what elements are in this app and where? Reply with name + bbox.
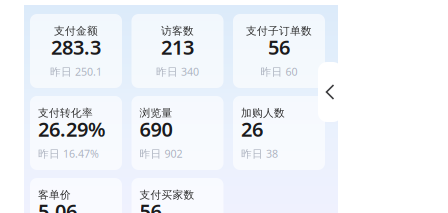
- staticText: 283.3: [51, 34, 101, 60]
- button[interactable]: 浏览量: [131, 96, 223, 170]
- button[interactable]: 支付转化率: [30, 96, 122, 170]
- staticText: 26.29%: [38, 116, 106, 142]
- button[interactable]: 支付金额: [30, 14, 122, 88]
- staticText: 支付子订单数: [246, 24, 312, 37]
- button[interactable]: 访客数: [131, 14, 223, 88]
- staticText: 690: [139, 116, 172, 142]
- staticText: 访客数: [161, 24, 194, 37]
- button[interactable]: 支付子订单数: [233, 14, 325, 88]
- staticText: 26: [241, 116, 263, 142]
- staticText: 213: [161, 34, 194, 60]
- staticText: 支付金额: [54, 24, 98, 37]
- staticText: 56: [139, 198, 161, 213]
- staticText: 支付买家数: [139, 188, 194, 201]
- button[interactable]: Collapse panel: [318, 62, 342, 122]
- button[interactable]: 支付买家数: [131, 178, 223, 213]
- staticText: 5.06: [38, 198, 77, 213]
- staticText: 支付转化率: [38, 106, 93, 119]
- staticText: 昨日 340: [156, 64, 199, 79]
- button[interactable]: 加购人数: [233, 96, 325, 170]
- staticText: 客单价: [38, 188, 71, 201]
- staticText: 昨日 16.47%: [38, 146, 99, 161]
- staticText: 加购人数: [241, 106, 285, 119]
- staticText: 浏览量: [139, 106, 172, 119]
- staticText: 昨日 60: [260, 64, 297, 79]
- button[interactable]: 客单价: [30, 178, 122, 213]
- staticText: 56: [268, 34, 290, 60]
- staticText: 昨日 38: [241, 146, 278, 161]
- staticText: 昨日 250.1: [50, 64, 102, 79]
- staticText: 昨日 902: [139, 146, 182, 161]
